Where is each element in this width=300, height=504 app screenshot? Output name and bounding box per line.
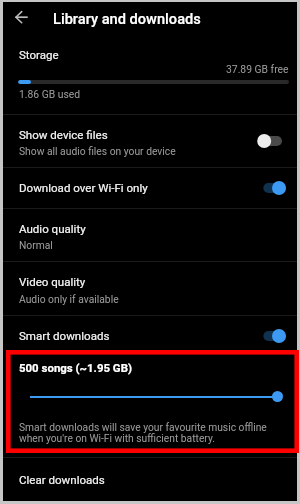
button[interactable] <box>3 167 297 208</box>
button[interactable] <box>3 208 297 261</box>
staticText: Clear downloads <box>19 473 105 487</box>
button[interactable] <box>3 114 297 167</box>
button[interactable]: Show device files toggle <box>255 129 288 153</box>
staticText: 1.86 GB used <box>19 88 81 100</box>
button[interactable] <box>3 457 297 502</box>
button[interactable] <box>3 315 297 356</box>
button[interactable]: Back <box>4 3 32 31</box>
staticText: Smart downloads will save your favourite… <box>19 421 267 445</box>
staticText: Library and downloads <box>53 10 201 27</box>
staticText: Audio only if available <box>19 293 119 305</box>
staticText: Smart downloads <box>19 329 110 343</box>
button[interactable]: Download over Wi-Fi only toggle <box>255 176 288 200</box>
staticText: Normal <box>19 239 53 251</box>
staticText: Download over Wi-Fi only <box>19 181 148 195</box>
staticText: Audio quality <box>19 222 86 236</box>
button[interactable]: Smart downloads toggle <box>255 324 288 348</box>
staticText: Show all audio files on your device <box>19 145 176 157</box>
staticText: Show device files <box>19 128 108 142</box>
staticText: Video quality <box>19 275 86 289</box>
staticText: 500 songs (~1.95 GB) <box>19 361 132 374</box>
button[interactable] <box>3 261 297 315</box>
button[interactable] <box>3 356 297 457</box>
staticText: 37.89 GB free <box>226 63 289 75</box>
button[interactable] <box>3 36 297 114</box>
staticText: Storage <box>19 48 59 61</box>
